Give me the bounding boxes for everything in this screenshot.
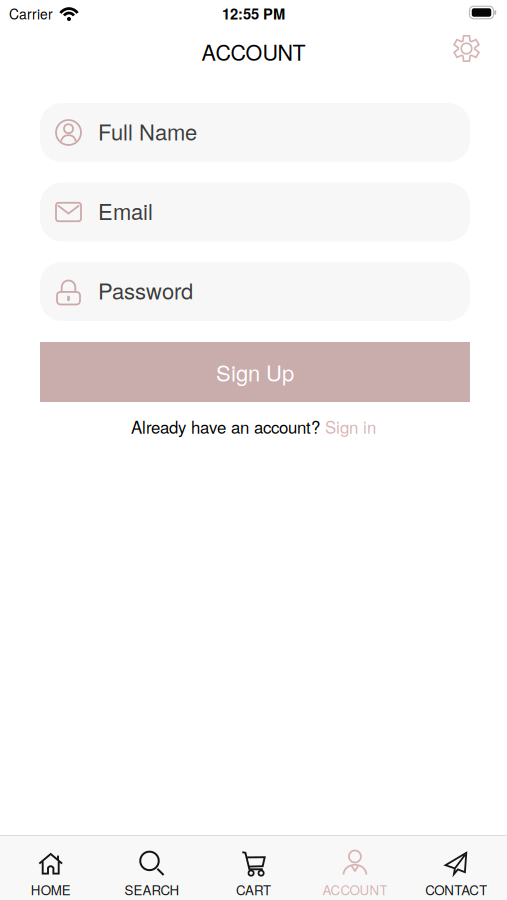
staticText: CONTACT (425, 880, 487, 899)
button[interactable]: CART (203, 835, 304, 900)
staticText: Email (98, 195, 153, 226)
staticText: Sign Up (216, 356, 294, 388)
button[interactable]: HOME (0, 835, 101, 900)
staticText: 12:55 PM (222, 3, 285, 24)
staticText: Sign in (325, 414, 376, 439)
staticText: ACCOUNT (201, 36, 305, 67)
staticText: Full Name (98, 115, 197, 147)
button[interactable]: Settings (446, 28, 486, 68)
staticText: SEARCH (125, 880, 180, 899)
button[interactable]: ACCOUNT (304, 835, 406, 900)
staticText: ACCOUNT (322, 880, 387, 899)
staticText: CART (236, 880, 271, 899)
button[interactable]: SEARCH (101, 835, 203, 900)
button[interactable]: Email (40, 182, 470, 241)
staticText: Already have an account? (131, 414, 320, 439)
staticText: Carrier (9, 4, 53, 23)
staticText: HOME (31, 880, 71, 899)
staticText: Password (98, 274, 193, 306)
button[interactable]: Sign in (325, 414, 376, 439)
button[interactable]: Sign Up (40, 342, 470, 402)
button[interactable]: CONTACT (406, 835, 507, 900)
button[interactable]: Password (40, 262, 470, 321)
button[interactable]: Full Name (40, 103, 470, 162)
